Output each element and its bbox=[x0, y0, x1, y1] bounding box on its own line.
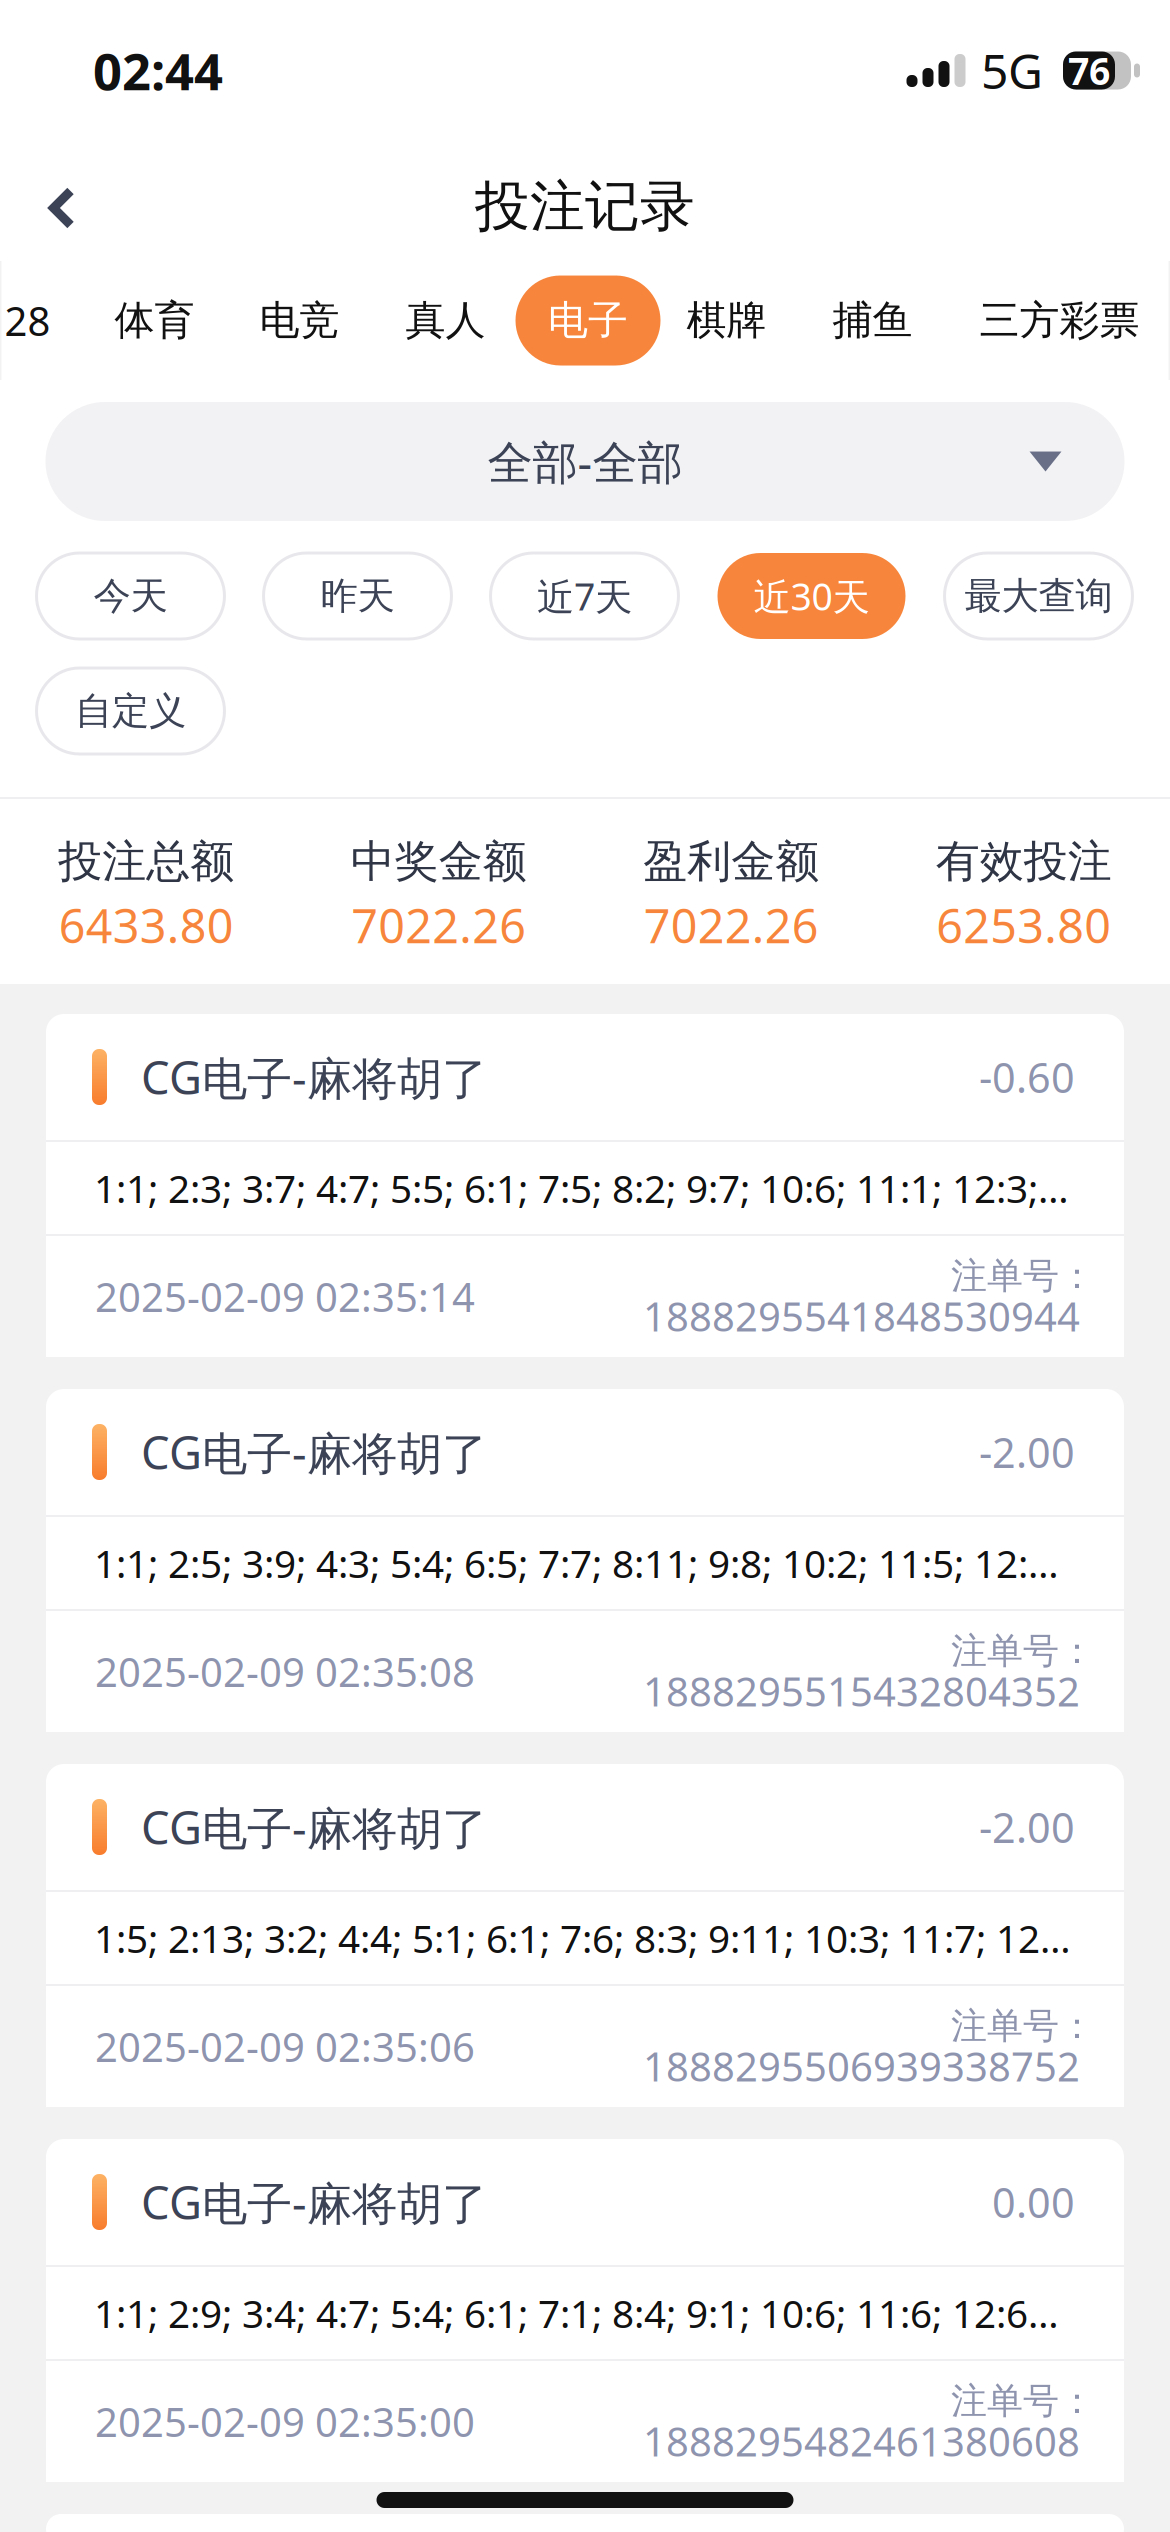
staticText: 1888295515432804352 bbox=[643, 1664, 1080, 1718]
staticText: 1:1; 2:3; 3:7; 4:7; 5:5; 6:1; 7:5; 8:2; … bbox=[94, 1162, 1069, 1214]
staticText: 电竞 bbox=[259, 295, 339, 346]
staticText: -2.00 bbox=[979, 1424, 1075, 1480]
staticText: 1:5; 2:13; 3:2; 4:4; 5:1; 6:1; 7:6; 8:3;… bbox=[94, 1912, 1071, 1964]
staticText: 今天 bbox=[93, 572, 167, 619]
staticText: 7022.26 bbox=[644, 893, 819, 957]
staticText: 2025-02-09 02:35:00 bbox=[95, 2394, 475, 2449]
button[interactable]: 近7天 bbox=[490, 553, 678, 639]
staticText: 昨天 bbox=[320, 572, 394, 619]
staticText: 2025-02-09 02:35:14 bbox=[95, 1269, 475, 1324]
staticText: 6433.80 bbox=[59, 893, 234, 957]
staticText: CG电子-麻将胡了 bbox=[141, 1796, 487, 1858]
button[interactable]: Back bbox=[0, 127, 124, 275]
button[interactable]: 全部-全部 bbox=[45, 402, 1124, 521]
staticText: 最大查询 bbox=[964, 572, 1112, 619]
staticText: 注单号： bbox=[951, 2003, 1095, 2049]
staticText: 近7天 bbox=[537, 571, 632, 621]
staticText: 1:1; 2:9; 3:4; 4:7; 5:4; 6:1; 7:1; 8:4; … bbox=[94, 2287, 1059, 2339]
button[interactable]: CG电子-麻将胡了 bbox=[0, 1389, 1170, 1732]
staticText: 投注总额 bbox=[58, 834, 234, 889]
button[interactable]: 棋牌 bbox=[686, 261, 832, 380]
staticText: 中奖金额 bbox=[351, 834, 527, 889]
staticText: 棋牌 bbox=[686, 295, 766, 346]
button[interactable]: 今天 bbox=[36, 553, 224, 639]
staticText: 1888295482461380608 bbox=[643, 2414, 1080, 2468]
staticText: 电子 bbox=[548, 295, 628, 346]
staticText: 28 bbox=[4, 293, 50, 348]
staticText: 盈利金额 bbox=[643, 834, 819, 889]
staticText: 6253.80 bbox=[936, 893, 1111, 957]
staticText: -0.60 bbox=[979, 1049, 1075, 1105]
staticText: 注单号： bbox=[951, 2378, 1095, 2424]
staticText: CG电子-麻将胡了 bbox=[141, 2171, 487, 2233]
staticText: 近30天 bbox=[753, 571, 869, 621]
staticText: 自定义 bbox=[75, 687, 186, 734]
button[interactable]: CG电子-麻将胡了 bbox=[0, 2139, 1170, 2482]
staticText: 76 bbox=[1068, 45, 1110, 96]
staticText: 投注记录 bbox=[475, 172, 695, 241]
staticText: 有效投注 bbox=[936, 834, 1112, 889]
button[interactable]: 真人 bbox=[405, 261, 515, 380]
button[interactable]: 体育 bbox=[114, 261, 259, 380]
button[interactable]: 三方彩票 bbox=[979, 261, 1168, 380]
staticText: 注单号： bbox=[951, 1253, 1095, 1299]
staticText: 5G bbox=[981, 38, 1043, 103]
button[interactable]: 最大查询 bbox=[944, 553, 1132, 639]
button[interactable]: CG电子-麻将胡了 bbox=[0, 1014, 1170, 1357]
button[interactable]: 28 bbox=[4, 261, 114, 380]
staticText: -2.00 bbox=[979, 1799, 1075, 1855]
button[interactable]: 电竞 bbox=[259, 261, 405, 380]
staticText: 0.00 bbox=[992, 2174, 1075, 2230]
staticText: 真人 bbox=[405, 295, 485, 346]
staticText: 体育 bbox=[114, 295, 194, 346]
staticText: 三方彩票 bbox=[979, 295, 1139, 346]
staticText: CG电子-麻将胡了 bbox=[141, 1046, 487, 1108]
button[interactable]: CG电子-麻将胡了 bbox=[0, 1764, 1170, 2107]
button[interactable]: 电子 bbox=[515, 261, 686, 380]
button[interactable]: 自定义 bbox=[36, 668, 224, 754]
staticText: 捕鱼 bbox=[832, 295, 912, 346]
staticText: 1888295541848530944 bbox=[643, 1289, 1080, 1343]
button[interactable]: 近30天 bbox=[717, 553, 905, 639]
staticText: 1888295506939338752 bbox=[643, 2039, 1080, 2093]
staticText: 2025-02-09 02:35:06 bbox=[95, 2019, 475, 2074]
button[interactable]: 昨天 bbox=[263, 553, 451, 639]
staticText: 7022.26 bbox=[351, 893, 526, 957]
staticText: CG电子-麻将胡了 bbox=[141, 1421, 487, 1483]
staticText: 注单号： bbox=[951, 1628, 1095, 1674]
staticText: 02:44 bbox=[93, 36, 223, 105]
staticText: 全部-全部 bbox=[487, 431, 682, 492]
staticText: 1:1; 2:5; 3:9; 4:3; 5:4; 6:5; 7:7; 8:11;… bbox=[94, 1537, 1059, 1589]
button[interactable]: 捕鱼 bbox=[832, 261, 979, 380]
staticText: 2025-02-09 02:35:08 bbox=[95, 1644, 475, 1699]
